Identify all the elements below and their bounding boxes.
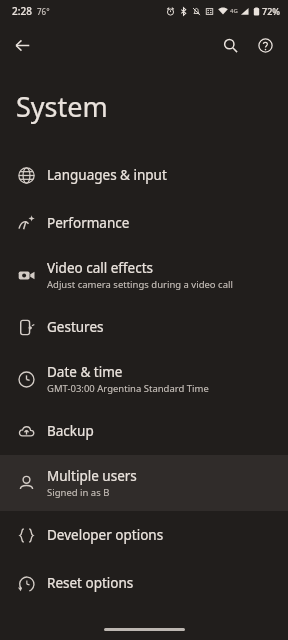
button[interactable]: Performance bbox=[0, 199, 288, 247]
button[interactable]: Developer options bbox=[0, 511, 288, 559]
button[interactable]: Multiple users bbox=[0, 455, 288, 511]
button[interactable]: Back bbox=[5, 28, 39, 62]
staticText: Signed in as B bbox=[47, 486, 110, 499]
staticText: 4G bbox=[230, 7, 238, 15]
staticText: Developer options bbox=[47, 526, 164, 544]
button[interactable]: Video call effects bbox=[0, 247, 288, 303]
staticText: Reset options bbox=[47, 574, 134, 592]
button[interactable]: Backup bbox=[0, 407, 288, 455]
staticText: Multiple users bbox=[47, 467, 137, 485]
button[interactable]: Languages & input bbox=[0, 151, 288, 199]
button[interactable]: Search bbox=[214, 29, 246, 61]
staticText: Date & time bbox=[47, 363, 123, 381]
staticText: 72% bbox=[262, 5, 280, 17]
button[interactable]: Date & time bbox=[0, 351, 288, 407]
button[interactable]: Gestures bbox=[0, 303, 288, 351]
staticText: GMT-03:00 Argentina Standard Time bbox=[47, 382, 209, 395]
staticText: System bbox=[16, 88, 108, 125]
staticText: Performance bbox=[47, 214, 130, 232]
button[interactable]: Help bbox=[249, 29, 281, 61]
staticText: Video call effects bbox=[47, 259, 154, 277]
staticText: Backup bbox=[47, 422, 94, 440]
button[interactable]: Reset options bbox=[0, 559, 288, 607]
staticText: 76° bbox=[37, 6, 50, 17]
staticText: 2:28 bbox=[12, 4, 32, 18]
staticText: Adjust camera settings during a video ca… bbox=[47, 278, 233, 291]
staticText: Languages & input bbox=[47, 166, 167, 184]
staticText: Gestures bbox=[47, 318, 104, 336]
